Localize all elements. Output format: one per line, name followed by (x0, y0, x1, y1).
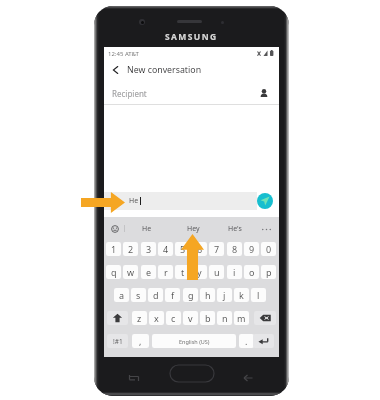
staticText: 1 (111, 243, 117, 255)
button[interactable]: x (149, 311, 164, 325)
button[interactable]: o (244, 265, 259, 279)
button[interactable]: 7 (209, 242, 224, 256)
button[interactable]: c (166, 311, 181, 325)
button[interactable]: p (261, 265, 276, 279)
button[interactable]: Back (243, 373, 253, 383)
button[interactable]: , (132, 334, 149, 348)
staticText: y (197, 266, 202, 278)
staticText: n (222, 312, 228, 324)
staticText: h (205, 289, 211, 301)
button[interactable]: 9 (244, 242, 259, 256)
button[interactable]: g (183, 288, 198, 302)
button[interactable]: d (148, 288, 163, 302)
button[interactable]: y (192, 265, 207, 279)
button[interactable]: 3 (141, 242, 156, 256)
button[interactable]: 8 (227, 242, 242, 256)
staticText: 0 (266, 243, 272, 255)
button[interactable]: n (217, 311, 232, 325)
staticText: z (137, 312, 142, 324)
button[interactable]: Enter (253, 334, 274, 348)
button[interactable]: v (183, 311, 198, 325)
button[interactable]: 6 (192, 242, 207, 256)
staticText: f (171, 289, 175, 301)
button[interactable]: Hey (177, 221, 209, 237)
staticText: 3 (146, 243, 152, 255)
staticText: SAMSUNG (165, 31, 218, 43)
staticText: m (237, 312, 246, 324)
button[interactable]: u (209, 265, 224, 279)
button[interactable]: h (200, 288, 215, 302)
button[interactable] (104, 192, 257, 210)
staticText: Recipient (112, 88, 147, 99)
button[interactable]: w (123, 265, 138, 279)
button[interactable]: e (141, 265, 156, 279)
button[interactable]: 2 (123, 242, 138, 256)
staticText: 7 (214, 243, 220, 255)
staticText: a (119, 289, 125, 301)
staticText: !#1 (113, 337, 123, 346)
staticText: , (139, 335, 142, 347)
button[interactable]: Home (170, 365, 214, 382)
button[interactable]: z (132, 311, 147, 325)
button[interactable]: Recents (129, 373, 139, 383)
button[interactable]: l (251, 288, 266, 302)
button[interactable]: f (165, 288, 180, 302)
staticText: o (249, 266, 255, 278)
button[interactable]: s (131, 288, 146, 302)
staticText: . (245, 335, 248, 347)
button[interactable]: He (131, 221, 163, 237)
staticText: 9 (249, 243, 255, 255)
staticText: g (188, 289, 194, 301)
button[interactable]: 5 (175, 242, 190, 256)
staticText: c (171, 312, 176, 324)
button[interactable]: Send (257, 193, 273, 209)
button[interactable]: q (106, 265, 121, 279)
button[interactable]: Emoji (111, 225, 119, 233)
button[interactable]: m (234, 311, 249, 325)
staticText: e (146, 266, 152, 278)
staticText: l (257, 289, 260, 301)
button[interactable]: t (175, 265, 190, 279)
staticText: x (154, 312, 159, 324)
button[interactable]: Backspace (254, 311, 276, 325)
staticText: d (153, 289, 159, 301)
staticText: 5 (180, 243, 186, 255)
staticText: 12:45 AT&T (108, 50, 139, 58)
button[interactable]: Shift (107, 311, 128, 325)
button[interactable]: Recipient (104, 83, 279, 104)
button[interactable]: b (200, 311, 215, 325)
staticText: b (205, 312, 211, 324)
staticText: 6 (197, 243, 203, 255)
staticText: He (129, 196, 139, 206)
button[interactable]: . (239, 334, 254, 348)
staticText: 4 (163, 243, 169, 255)
staticText: v (188, 312, 193, 324)
button[interactable]: !#1 (107, 334, 128, 348)
staticText: He (142, 224, 152, 234)
button[interactable]: r (158, 265, 173, 279)
staticText: r (164, 266, 168, 278)
button[interactable]: 4 (158, 242, 173, 256)
button[interactable]: 1 (106, 242, 121, 256)
button[interactable]: More suggestions (259, 223, 273, 235)
button[interactable]: j (217, 288, 232, 302)
staticText: k (239, 289, 244, 301)
button[interactable]: k (234, 288, 249, 302)
button[interactable]: 0 (261, 242, 276, 256)
button[interactable]: English (US) (152, 334, 236, 348)
staticText: Hey (187, 224, 200, 234)
staticText: He's (228, 224, 242, 234)
staticText: i (233, 266, 236, 278)
button[interactable]: He's (219, 221, 251, 237)
staticText: 2 (128, 243, 134, 255)
button[interactable]: a (114, 288, 129, 302)
button[interactable]: Back (104, 59, 127, 81)
staticText: English (US) (179, 338, 210, 345)
staticText: w (127, 266, 135, 278)
staticText: t (181, 266, 185, 278)
button[interactable]: i (227, 265, 242, 279)
staticText: j (223, 289, 226, 301)
staticText: 8 (232, 243, 238, 255)
staticText: u (214, 266, 220, 278)
staticText: New conversation (127, 64, 202, 76)
